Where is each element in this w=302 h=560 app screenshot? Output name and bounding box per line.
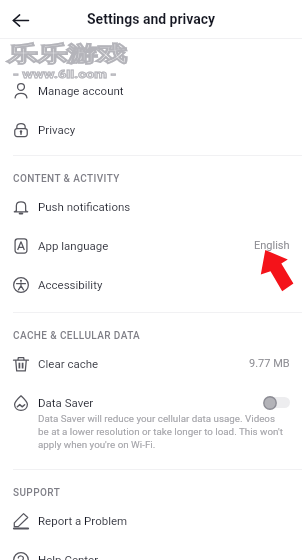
staticText: Settings and privacy	[87, 11, 216, 27]
staticText: Push notifications	[38, 200, 131, 213]
button[interactable]: App language	[0, 226, 302, 265]
button[interactable]: Privacy	[0, 110, 302, 149]
staticText: CACHE & CELLULAR DATA	[13, 330, 141, 342]
staticText: Data Saver	[38, 396, 94, 409]
button[interactable]: Data Saver	[0, 383, 302, 422]
staticText: Accessibility	[38, 278, 103, 291]
staticText: App language	[38, 239, 109, 252]
staticText: Clear cache	[38, 357, 99, 370]
button[interactable]: Report a Problem	[0, 501, 302, 540]
staticText: apply when you're on Wi-Fi.	[38, 439, 156, 452]
button[interactable]: Manage account	[0, 71, 302, 110]
staticText: Manage account	[38, 84, 124, 97]
button[interactable]: Push notifications	[0, 187, 302, 226]
staticText: Data Saver will reduce your cellular dat…	[38, 413, 294, 426]
button[interactable]: Back	[5, 5, 35, 35]
staticText: - www.6ll.com -	[13, 68, 117, 81]
staticText: 9.77 MB	[249, 357, 290, 370]
staticText: Report a Problem	[38, 514, 128, 527]
button[interactable]: Help Center	[0, 540, 302, 560]
staticText: CONTENT & ACTIVITY	[13, 173, 120, 185]
staticText: be at a lower resolution or take longer …	[38, 426, 283, 439]
button[interactable]: Clear cache	[0, 344, 302, 383]
staticText: 乐乐游戏	[7, 41, 127, 68]
staticText: Privacy	[38, 123, 76, 136]
staticText: Help Center	[38, 553, 99, 560]
button[interactable]: Accessibility	[0, 265, 302, 304]
staticText: English	[254, 239, 290, 252]
staticText: SUPPORT	[13, 487, 61, 499]
